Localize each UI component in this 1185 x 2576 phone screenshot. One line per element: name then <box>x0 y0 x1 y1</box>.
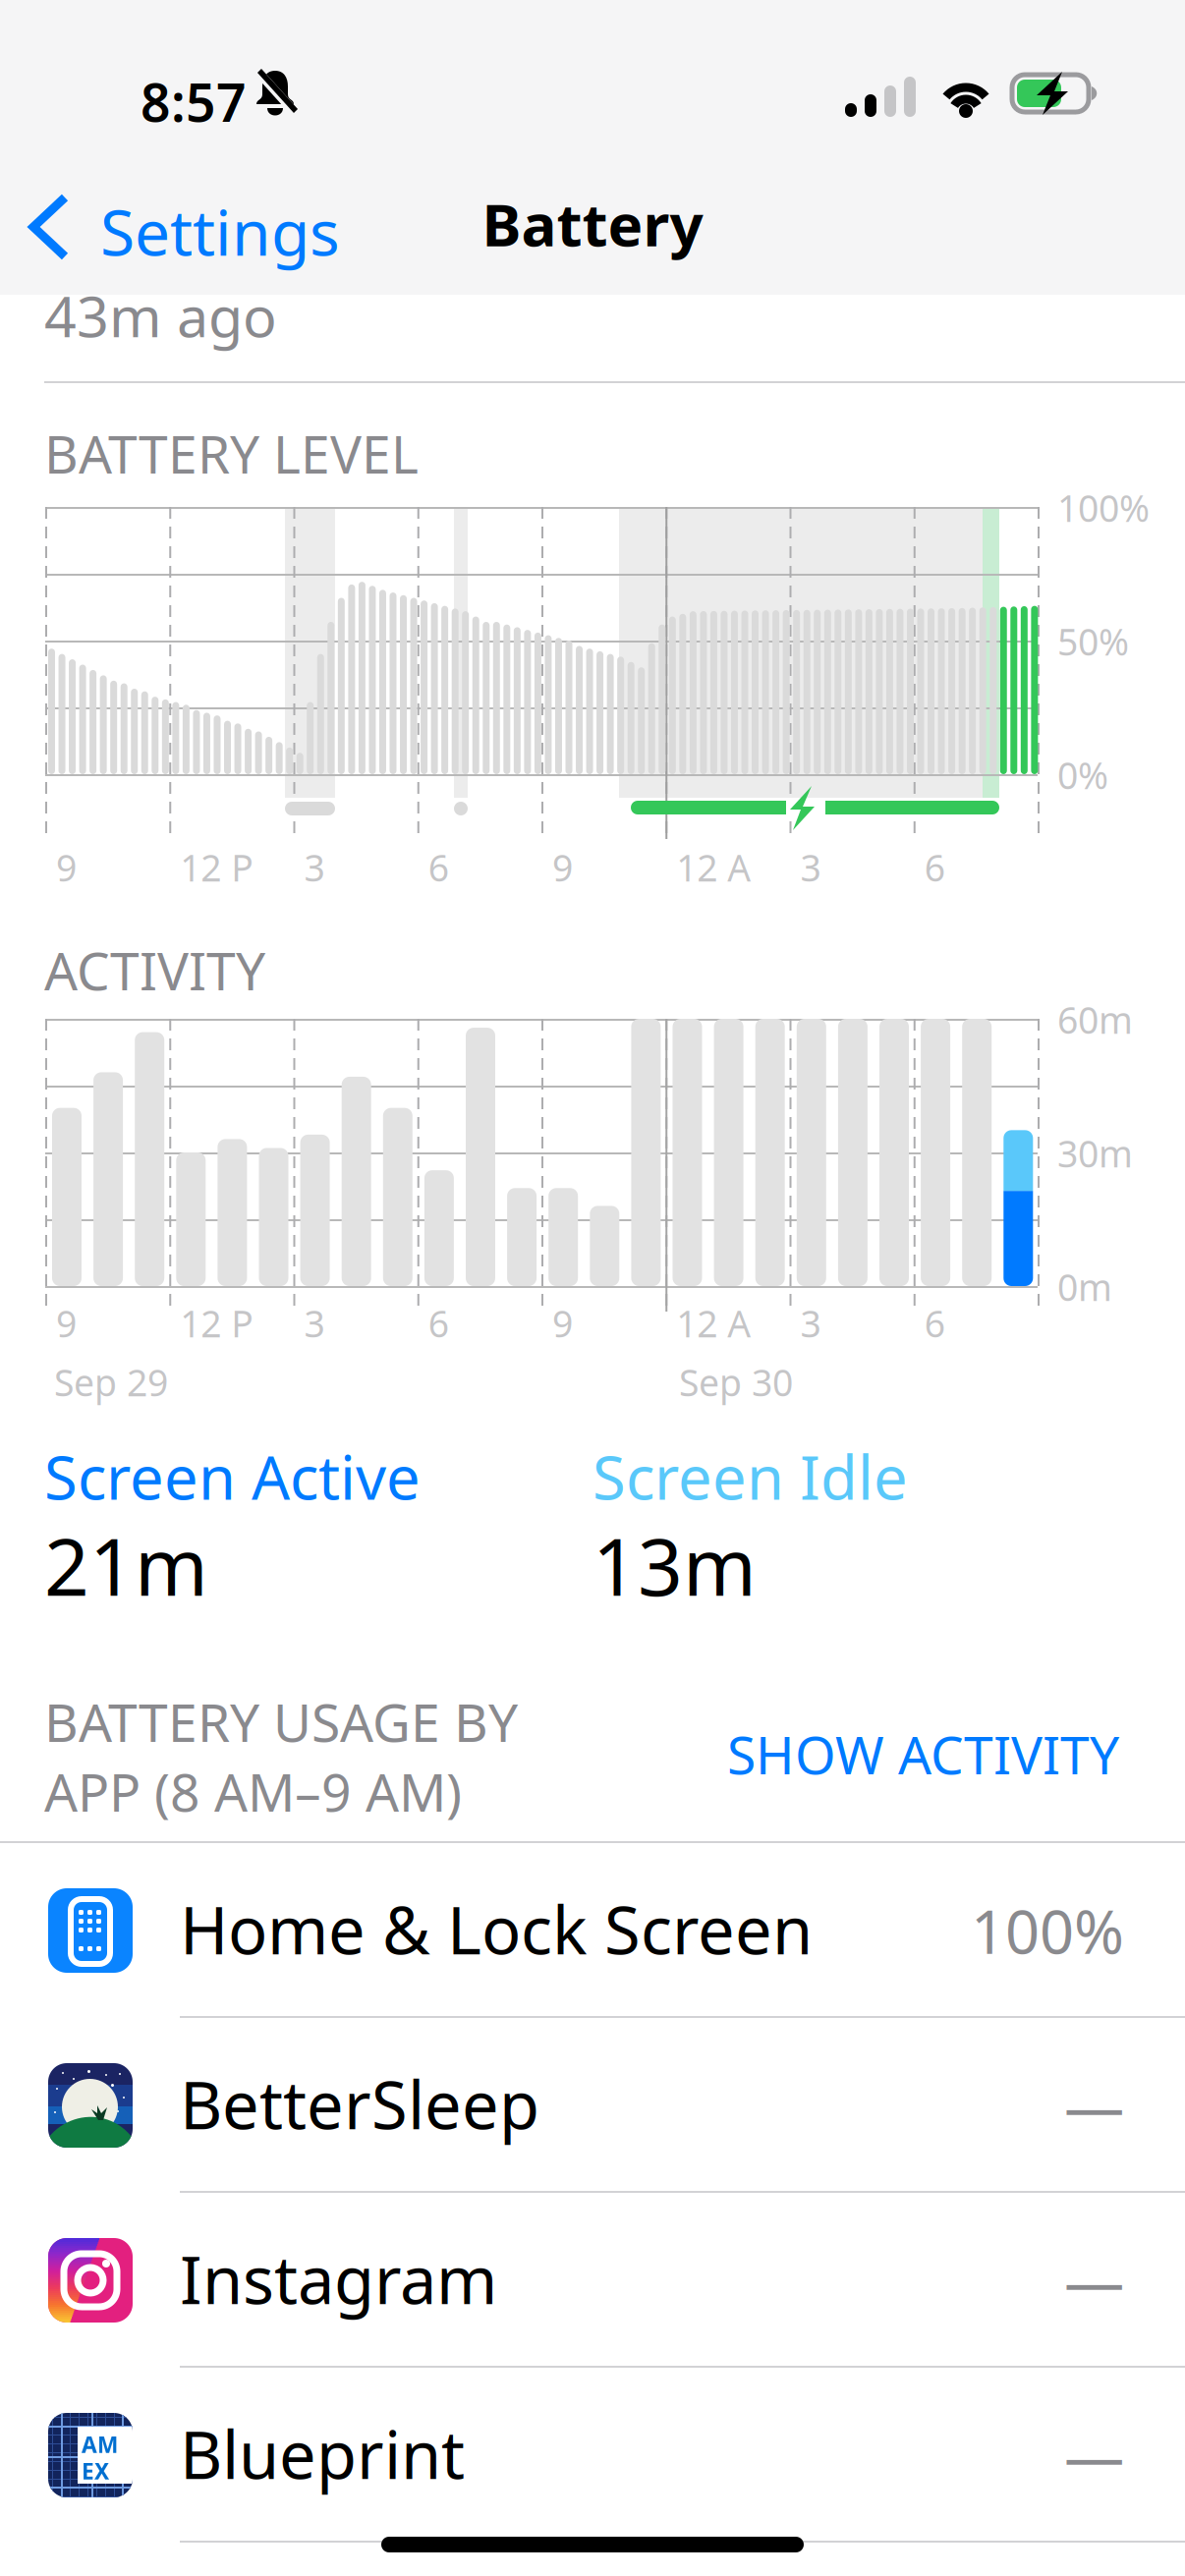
button[interactable]: Home & Lock Screen <box>0 1843 1185 2018</box>
staticText: 3 <box>800 843 821 892</box>
staticText: — <box>1064 2240 1124 2320</box>
staticText: Battery <box>482 184 703 263</box>
staticText: 21m <box>44 1513 208 1617</box>
staticText: 3 <box>304 1299 325 1348</box>
staticText: 60m <box>1057 995 1133 1044</box>
staticText: 100% <box>1057 483 1150 532</box>
staticText: Blueprint <box>180 2410 465 2497</box>
staticText: — <box>1064 2415 1124 2495</box>
staticText: 12 A <box>676 1299 751 1348</box>
staticText: Sep 29 <box>54 1358 168 1406</box>
staticText: AM <box>82 2430 118 2459</box>
staticText: Home & Lock Screen <box>180 1885 813 1972</box>
staticText: 100% <box>971 1891 1124 1971</box>
staticText: EX <box>82 2456 109 2486</box>
staticText: Screen Idle <box>592 1436 908 1516</box>
staticText: — <box>1064 2065 1124 2145</box>
staticText: BATTERY LEVEL <box>44 419 419 488</box>
staticText: 6 <box>924 843 945 892</box>
staticText: 9 <box>552 843 573 892</box>
staticText: 12 P <box>180 843 254 892</box>
staticText: 9 <box>56 1299 77 1348</box>
staticText: BetterSleep <box>180 2060 539 2147</box>
staticText: Screen Active <box>44 1436 421 1516</box>
staticText: 3 <box>304 843 325 892</box>
staticText: 9 <box>552 1299 573 1348</box>
staticText: SHOW ACTIVITY <box>727 1719 1119 1789</box>
button[interactable]: BetterSleep <box>0 2018 1185 2193</box>
staticText: Settings <box>100 190 340 273</box>
staticText: 8:57 <box>141 67 247 136</box>
staticText: 13m <box>592 1513 757 1617</box>
staticText: 43m ago <box>44 278 277 353</box>
staticText: 9 <box>56 843 77 892</box>
staticText: ACTIVITY <box>44 935 265 1005</box>
staticText: 30m <box>1057 1129 1133 1178</box>
staticText: Sep 30 <box>679 1358 793 1406</box>
staticText: 6 <box>428 843 449 892</box>
staticText: Instagram <box>180 2235 497 2322</box>
button[interactable]: AM <box>0 2368 1185 2543</box>
staticText: 12 A <box>676 843 751 892</box>
staticText: 6 <box>428 1299 449 1348</box>
staticText: 0% <box>1057 751 1108 799</box>
staticText: 50% <box>1057 617 1129 666</box>
button[interactable]: Instagram <box>0 2193 1185 2368</box>
staticText: APP (8 AM–9 AM) <box>44 1757 462 1826</box>
staticText: 12 P <box>180 1299 254 1348</box>
staticText: 0m <box>1057 1262 1112 1311</box>
staticText: 6 <box>924 1299 945 1348</box>
staticText: BATTERY USAGE BY <box>44 1687 518 1756</box>
staticText: 3 <box>800 1299 821 1348</box>
button[interactable]: Settings <box>0 152 373 295</box>
